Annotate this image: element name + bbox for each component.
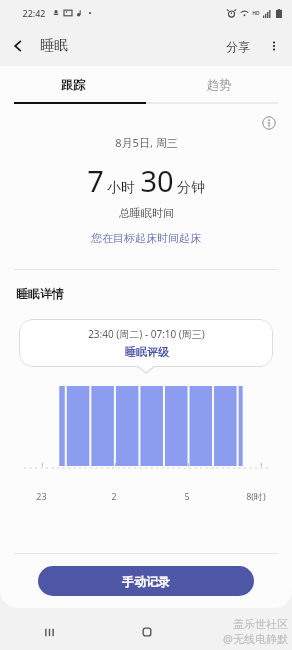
button[interactable]: 趋势 <box>146 66 292 102</box>
button[interactable]: Back <box>195 614 292 650</box>
staticText: 分享 <box>226 39 250 54</box>
button[interactable]: Back <box>0 29 34 63</box>
button[interactable]: Recent apps <box>0 614 98 650</box>
staticText: 跟踪 <box>61 77 85 92</box>
staticText: 睡眠 <box>40 37 68 55</box>
staticText: 小时 <box>107 179 135 197</box>
button[interactable]: More options <box>258 30 290 62</box>
staticText: 2 <box>111 490 117 502</box>
staticText: 8(时) <box>246 490 266 502</box>
staticText: 22:42 <box>22 7 46 19</box>
button[interactable]: 手动记录 <box>38 566 254 596</box>
button[interactable]: 23:40 (周二) - 07:10 (周三) <box>19 319 273 367</box>
button[interactable]: Information <box>256 110 282 136</box>
staticText: HD <box>252 10 260 17</box>
staticText: 5 <box>184 490 190 502</box>
staticText: 趋势 <box>207 77 231 92</box>
staticText: 分钟 <box>177 179 205 197</box>
staticText: @无线电静默 <box>223 631 288 646</box>
staticText: 7 <box>87 161 104 200</box>
staticText: 手动记录 <box>122 574 170 589</box>
button[interactable]: 跟踪 <box>0 66 146 102</box>
staticText: 8月5日, 周三 <box>115 135 178 150</box>
staticText: 您在目标起床时间起床 <box>91 231 201 245</box>
button[interactable]: Home <box>98 614 195 650</box>
staticText: 盖乐世社区 <box>233 617 288 631</box>
staticText: 23 <box>36 490 47 502</box>
button[interactable]: 分享 <box>218 33 258 60</box>
staticText: 23:40 (周二) - 07:10 (周三) <box>88 327 205 341</box>
staticText: 30 <box>140 161 174 200</box>
staticText: 总睡眠时间 <box>119 206 174 220</box>
staticText: 睡眠评级 <box>125 345 169 359</box>
staticText: 睡眠详情 <box>16 286 64 301</box>
